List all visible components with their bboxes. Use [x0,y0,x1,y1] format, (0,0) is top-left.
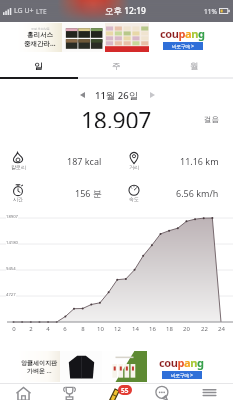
staticText: 일 [34,61,43,72]
staticText: 가벼운 … [27,367,52,375]
staticText: LTE [36,7,47,16]
staticText: 바로구매 > [172,43,194,49]
staticText: 6.56 km/h [176,187,219,199]
button[interactable]: Previous day [74,87,90,103]
staticText: 14180 [6,240,18,246]
button[interactable]: Chat [139,384,186,400]
button[interactable]: 시간 [0,177,116,209]
button[interactable]: 월 [155,56,233,77]
staticText: 바로구매 > [171,372,193,378]
button[interactable]: Rewards [92,384,139,400]
staticText: 월 [190,61,199,72]
staticText: 앙클세이지판 [21,359,57,367]
staticText: 22 [201,325,208,333]
staticText: 16 [149,325,156,333]
button[interactable]: Advertisement [17,23,215,52]
staticText: 홍리서스 [27,31,53,39]
button[interactable]: Rankings [46,384,92,400]
button[interactable]: 속도 [116,177,233,209]
staticText: 10 [97,325,104,333]
staticText: 6 [63,325,67,333]
staticText: 55 [121,386,129,395]
staticText: 12 [114,325,121,333]
staticText: 18 [166,325,173,333]
staticText: 18907 [6,214,18,220]
button[interactable]: 거리 [116,145,233,177]
staticText: 시간 [13,196,23,202]
staticText: 8 [81,325,85,333]
staticText: 거리 [129,164,139,170]
staticText: 14 [132,325,139,333]
staticText: 20 [183,325,190,333]
staticText: 0 [12,325,16,333]
staticText: 11월 26일 [95,89,139,102]
staticText: 속도 [129,196,139,202]
button[interactable]: 일 [0,56,77,77]
staticText: 칼로리 [11,164,26,170]
staticText: 주 [112,61,121,72]
staticText: 156 분 [75,187,102,199]
staticText: 11.16 km [180,155,219,167]
staticText: 걸음 [204,115,219,124]
staticText: 187 kcal [67,155,102,167]
staticText: 쿠팡 추천상품 [31,27,50,31]
staticText: LG U+ [14,6,34,16]
button[interactable]: Home [0,384,46,400]
button[interactable]: 칼로리 [0,145,116,177]
button[interactable]: Menu [186,384,233,400]
staticText: 중재간라… [24,39,56,48]
staticText: 4 [46,325,50,333]
staticText: 24 [218,325,225,333]
staticText: 4727 [6,292,16,298]
staticText: 2 [29,325,33,333]
staticText: 18,907 [81,104,152,128]
staticText: coupang [160,26,205,41]
button[interactable]: Advertisement [17,351,215,382]
button[interactable]: Next day [144,87,160,103]
staticText: coupang [159,355,204,370]
staticText: 오후 12:19 [105,5,146,17]
staticText: 11% [204,7,217,16]
button[interactable]: 주 [77,56,155,77]
staticText: 9454 [6,266,16,272]
